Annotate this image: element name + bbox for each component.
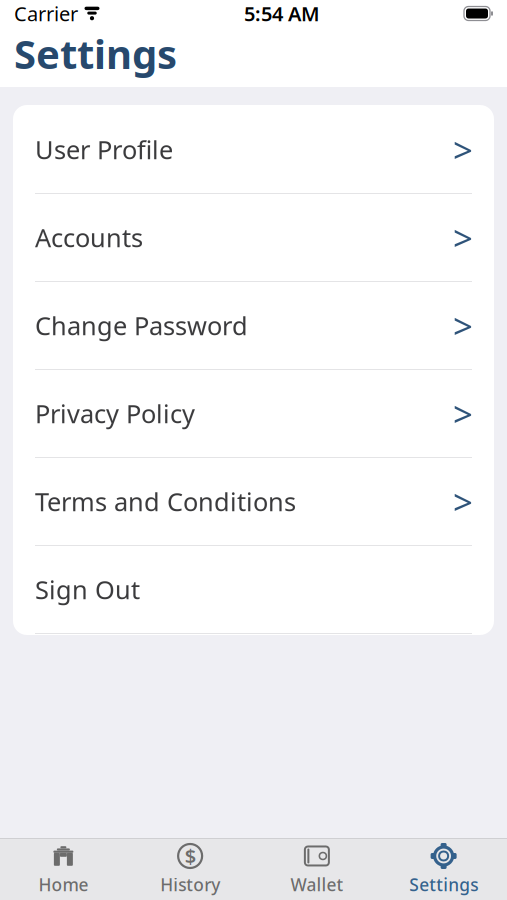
- staticText: $: [185, 843, 196, 869]
- staticText: Settings: [14, 27, 177, 80]
- button[interactable]: Privacy Policy: [13, 370, 494, 458]
- staticText: >: [453, 302, 473, 348]
- button[interactable]: Settings: [380, 839, 507, 900]
- staticText: Home: [38, 873, 88, 896]
- button[interactable]: $: [127, 839, 254, 900]
- staticText: History: [160, 873, 220, 896]
- button[interactable]: User Profile: [13, 106, 494, 194]
- staticText: Sign Out: [35, 573, 140, 606]
- staticText: Settings: [409, 873, 478, 896]
- button[interactable]: Home: [0, 839, 127, 900]
- staticText: Carrier: [14, 0, 78, 27]
- staticText: Terms and Conditions: [35, 485, 296, 518]
- staticText: Wallet: [290, 873, 343, 896]
- button[interactable]: Change Password: [13, 282, 494, 370]
- button[interactable]: Terms and Conditions: [13, 458, 494, 546]
- staticText: Privacy Policy: [35, 397, 195, 430]
- button[interactable]: Accounts: [13, 194, 494, 282]
- staticText: >: [453, 126, 473, 172]
- staticText: Accounts: [35, 221, 143, 254]
- staticText: >: [453, 214, 473, 260]
- staticText: User Profile: [35, 133, 173, 166]
- button[interactable]: Wallet: [253, 839, 380, 900]
- staticText: Change Password: [35, 309, 248, 342]
- button[interactable]: Sign Out: [13, 546, 494, 634]
- staticText: >: [453, 478, 473, 524]
- staticText: >: [453, 390, 473, 436]
- staticText: 5:54 AM: [244, 0, 320, 27]
